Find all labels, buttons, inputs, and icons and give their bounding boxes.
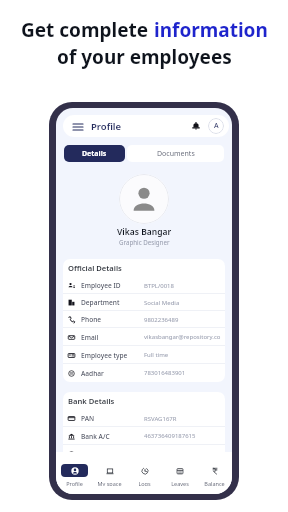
button[interactable]: Notifications (190, 120, 202, 132)
button[interactable]: Logs (127, 464, 162, 486)
button[interactable]: Aadhar (63, 364, 225, 382)
staticText: Details (82, 149, 107, 159)
staticText: Leaves (171, 480, 189, 486)
staticText: Official Details (68, 263, 122, 273)
button[interactable]: IFSC (63, 445, 225, 463)
staticText: Vikas Bangar (117, 226, 172, 238)
staticText: vikasbangar@repository.com (144, 333, 223, 341)
button[interactable]: Profile (56, 464, 92, 486)
staticText: Employee type (81, 351, 128, 360)
button[interactable]: Details (64, 145, 125, 162)
staticText: Logs (138, 480, 151, 486)
staticText: Bank Details (68, 396, 115, 406)
staticText: A (214, 121, 219, 131)
button[interactable]: Employee type (63, 346, 225, 364)
staticText: Email (81, 333, 99, 342)
button[interactable]: Bank A/C (63, 427, 225, 445)
button[interactable]: My space (92, 464, 127, 486)
staticText: Department (81, 298, 120, 307)
button[interactable]: Phone (63, 311, 225, 328)
staticText: Balance (204, 480, 225, 486)
staticText: 783016483901 (144, 369, 186, 377)
staticText: PAN (81, 414, 95, 423)
button[interactable]: Menu (71, 120, 84, 133)
staticText: information (154, 17, 268, 43)
staticText: Get complete (21, 17, 154, 43)
staticText: Employee ID (81, 281, 121, 290)
staticText: My space (97, 480, 122, 486)
staticText: Phone (81, 315, 102, 324)
staticText: 463736409187615 (144, 432, 196, 440)
staticText: Documents (157, 149, 195, 159)
staticText: of your employees (57, 44, 232, 70)
button[interactable]: A (208, 118, 224, 134)
staticText: Bank A/C (81, 432, 110, 441)
staticText: Social Media (144, 299, 180, 307)
staticText: Aadhar (81, 369, 104, 378)
staticText: RSVAG167R (144, 415, 177, 423)
button[interactable]: Employee ID (63, 277, 225, 294)
staticText: Profile (91, 120, 122, 133)
staticText: 9802236489 (144, 316, 179, 324)
button[interactable]: Department (63, 294, 225, 311)
staticText: Profile (66, 480, 83, 486)
button[interactable]: Balance (197, 464, 232, 486)
staticText: BTPL/0018 (144, 282, 174, 290)
staticText: Full time (144, 351, 169, 359)
button[interactable]: PAN (63, 410, 225, 427)
button[interactable]: Documents (127, 145, 224, 162)
button[interactable]: Leaves (162, 464, 197, 486)
staticText: Graphic Designer (119, 238, 170, 246)
button[interactable]: Email (63, 328, 225, 346)
